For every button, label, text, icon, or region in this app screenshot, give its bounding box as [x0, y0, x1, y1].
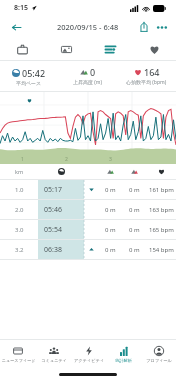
staticText: 2.0: [15, 206, 24, 214]
staticText: 2: [65, 156, 68, 163]
staticText: 3.2: [15, 246, 24, 254]
staticText: 05:54: [44, 225, 62, 235]
button[interactable]: ニュースフィード: [0, 340, 36, 368]
staticText: 161 bpm: [149, 186, 174, 194]
button[interactable]: 統計解析: [106, 340, 141, 368]
button[interactable]: 3.0: [0, 220, 176, 239]
staticText: プロフィール: [146, 358, 172, 363]
staticText: 1.0: [15, 186, 24, 194]
staticText: 8:15: [14, 3, 28, 13]
staticText: 0 m: [105, 226, 116, 234]
staticText: 統計解析: [115, 358, 132, 363]
button[interactable]: Back: [6, 17, 26, 37]
button[interactable]: Stats: [88, 38, 132, 60]
staticText: 163 bpm: [149, 206, 174, 214]
staticText: コミュニティ: [41, 358, 67, 363]
staticText: ニュースフィード: [1, 358, 36, 363]
staticText: km: [15, 168, 24, 175]
staticText: 3: [109, 156, 112, 163]
staticText: 05:17: [44, 185, 62, 195]
staticText: 164: [144, 66, 160, 78]
staticText: 0 m: [105, 206, 116, 214]
staticText: 165 bpm: [149, 226, 174, 234]
staticText: 平均ペース: [16, 80, 42, 86]
staticText: 2020/09/15 - 6:48: [57, 22, 119, 32]
staticText: 0 m: [129, 246, 140, 254]
staticText: 05:42: [22, 67, 46, 79]
staticText: 1: [21, 156, 24, 163]
staticText: 05:46: [44, 205, 62, 215]
staticText: アクティビティ: [74, 358, 104, 363]
button[interactable]: コミュニティ: [36, 340, 71, 368]
staticText: 0 m: [129, 206, 140, 214]
button[interactable]: 2.0: [0, 200, 176, 219]
staticText: 0 m: [129, 186, 140, 194]
staticText: 0: [90, 66, 96, 78]
staticText: 心拍数平均 (bpm): [126, 79, 167, 86]
button[interactable]: More options: [153, 18, 171, 36]
button[interactable]: Photos: [44, 38, 88, 60]
button[interactable]: 3.2: [0, 240, 176, 259]
button[interactable]: Heart rate: [132, 38, 176, 60]
staticText: 0 m: [105, 246, 116, 254]
staticText: 0 m: [105, 186, 116, 194]
button[interactable]: Share: [135, 18, 153, 36]
staticText: 上昇高度 (m): [73, 79, 102, 86]
button[interactable]: プロフィール: [141, 340, 176, 368]
staticText: 154 bpm: [149, 246, 174, 254]
staticText: 06:38: [44, 245, 62, 255]
button[interactable]: Map: [0, 38, 44, 60]
staticText: 0 m: [129, 226, 140, 234]
button[interactable]: 1.0: [0, 180, 176, 199]
button[interactable]: アクティビティ: [71, 340, 106, 368]
staticText: 3.0: [15, 226, 24, 234]
